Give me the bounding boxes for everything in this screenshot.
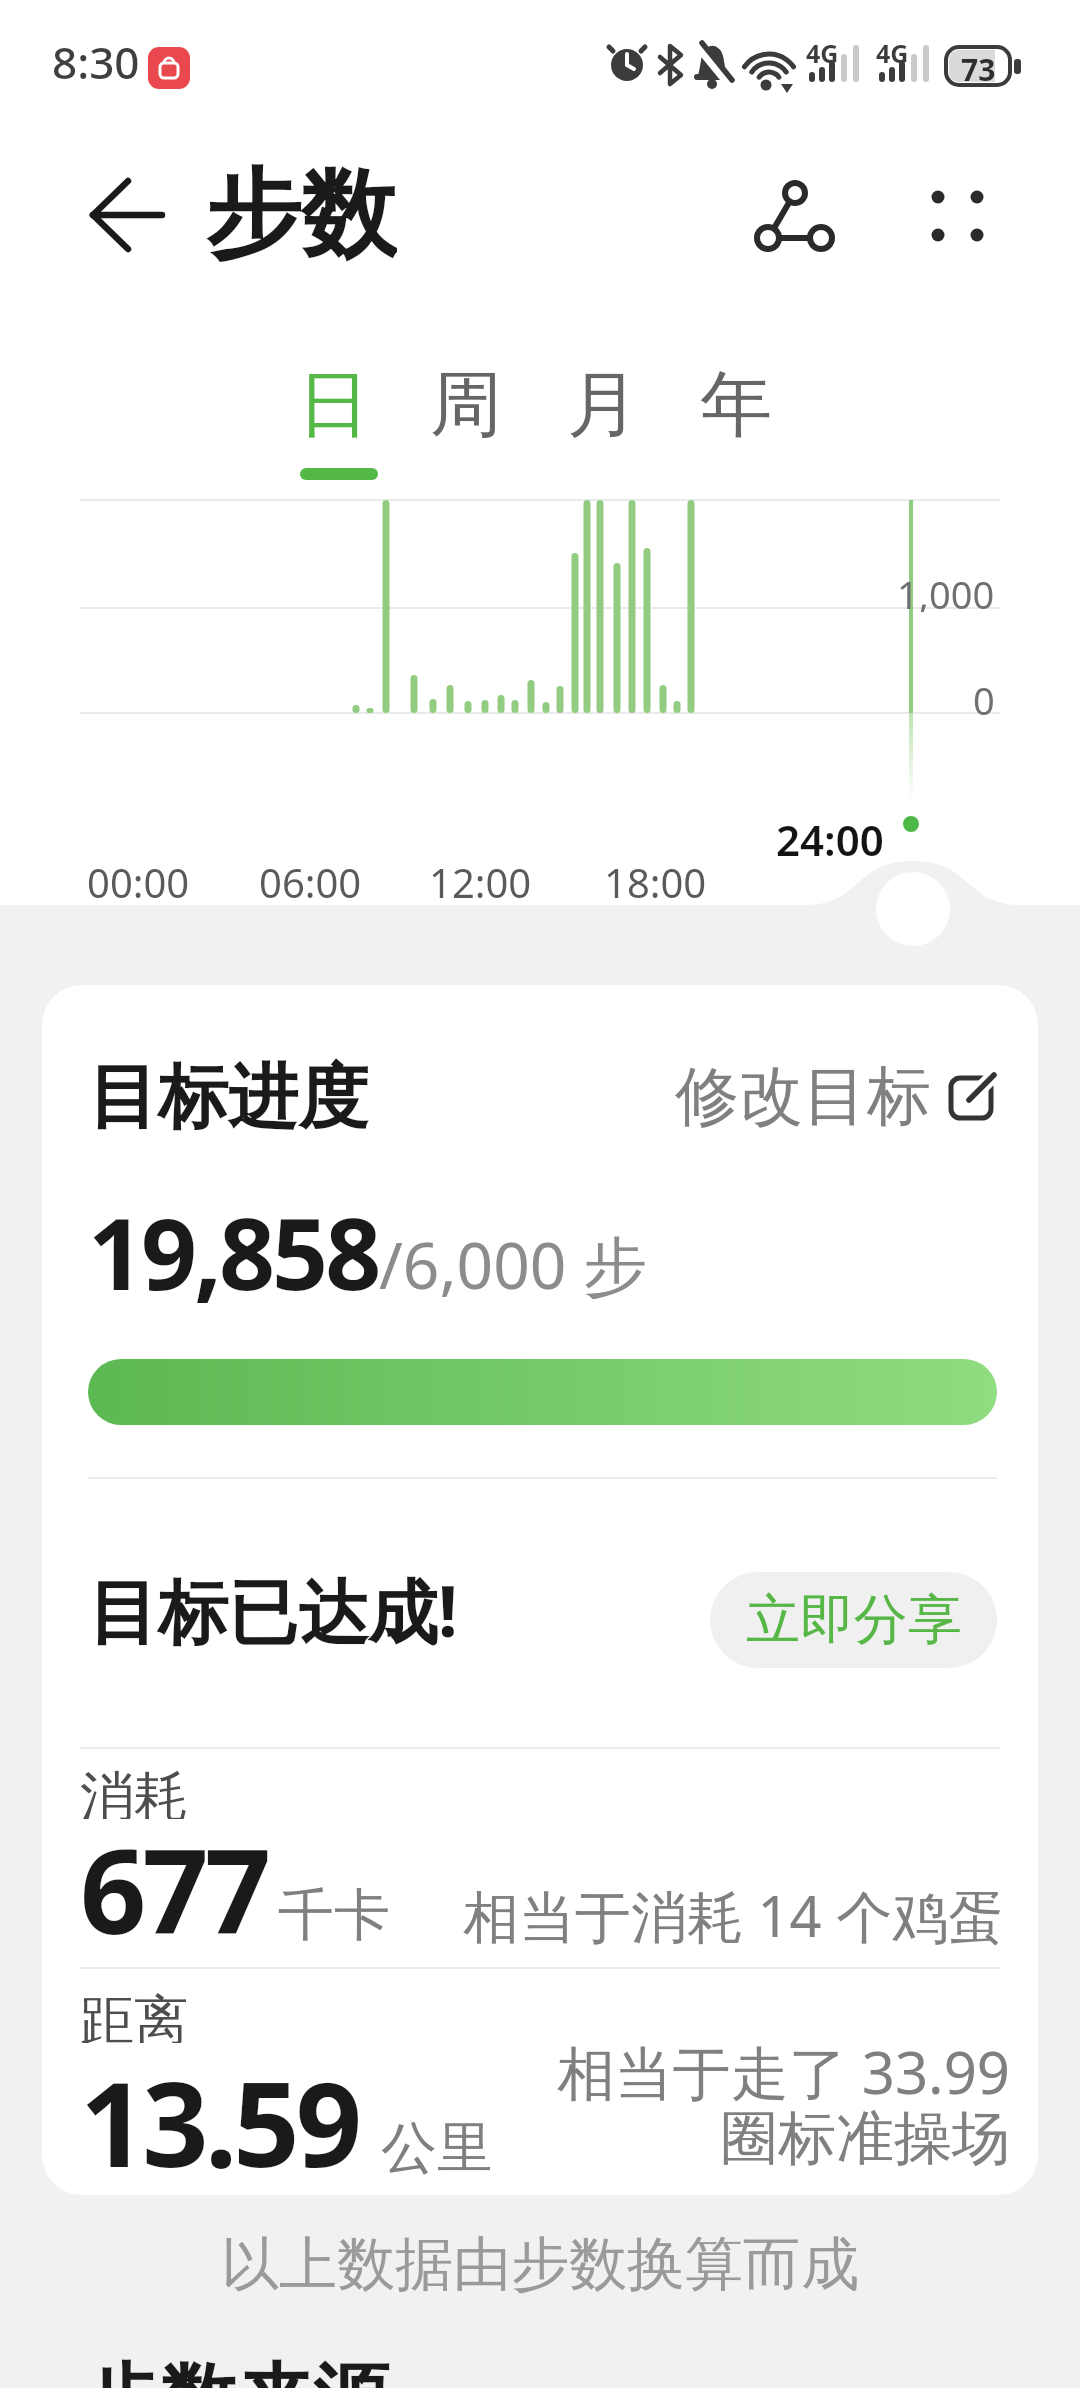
- staticText: 千卡: [278, 1880, 390, 1951]
- staticText: 4G: [876, 36, 909, 64]
- button[interactable]: 日: [279, 353, 389, 457]
- staticText: 00:00: [87, 855, 190, 901]
- staticText: 19,858: [88, 1185, 379, 1318]
- staticText: 12:00: [429, 855, 532, 901]
- staticText: 1,000: [897, 568, 995, 612]
- staticText: 13.59: [80, 2043, 359, 2195]
- staticText: 24:00: [776, 811, 884, 857]
- staticText: 相当于消耗 14 个鸡蛋: [463, 1877, 1005, 1953]
- staticText: 立即分享: [746, 1586, 962, 1654]
- button[interactable]: 立即分享: [710, 1572, 997, 1668]
- staticText: 0: [973, 674, 995, 718]
- staticText: 修改目标: [675, 1056, 931, 1136]
- staticText: 步数来源: [85, 2352, 389, 2388]
- staticText: 消耗: [80, 1763, 188, 1819]
- staticText: 73: [961, 49, 996, 83]
- staticText: 4G: [806, 36, 839, 64]
- staticText: 以上数据由步数换算而成: [221, 2228, 859, 2298]
- staticText: 月: [567, 360, 639, 451]
- staticText: 目标进度: [88, 1054, 368, 1142]
- staticText: 677: [80, 1810, 268, 1968]
- button[interactable]: [70, 180, 175, 250]
- button[interactable]: 周: [411, 353, 521, 457]
- button[interactable]: [915, 175, 1000, 255]
- button[interactable]: [740, 165, 850, 265]
- button[interactable]: [876, 872, 950, 946]
- staticText: 日: [298, 360, 370, 451]
- staticText: 步数: [205, 155, 397, 275]
- button[interactable]: 修改目标: [602, 1056, 997, 1136]
- staticText: 公里: [381, 2113, 493, 2184]
- staticText: 18:00: [604, 855, 707, 901]
- staticText: 距离: [80, 1987, 188, 2043]
- staticText: 目标已达成!: [88, 1562, 458, 1658]
- staticText: 8:30: [52, 32, 140, 84]
- staticText: 年: [700, 360, 772, 451]
- staticText: 周: [430, 360, 502, 451]
- button[interactable]: 月: [548, 353, 658, 457]
- staticText: 相当于走了 33.99 圈标准操场: [556, 2032, 1010, 2172]
- staticText: /6,000 步: [379, 1221, 648, 1308]
- button[interactable]: 年: [681, 353, 791, 457]
- staticText: 06:00: [259, 855, 362, 901]
